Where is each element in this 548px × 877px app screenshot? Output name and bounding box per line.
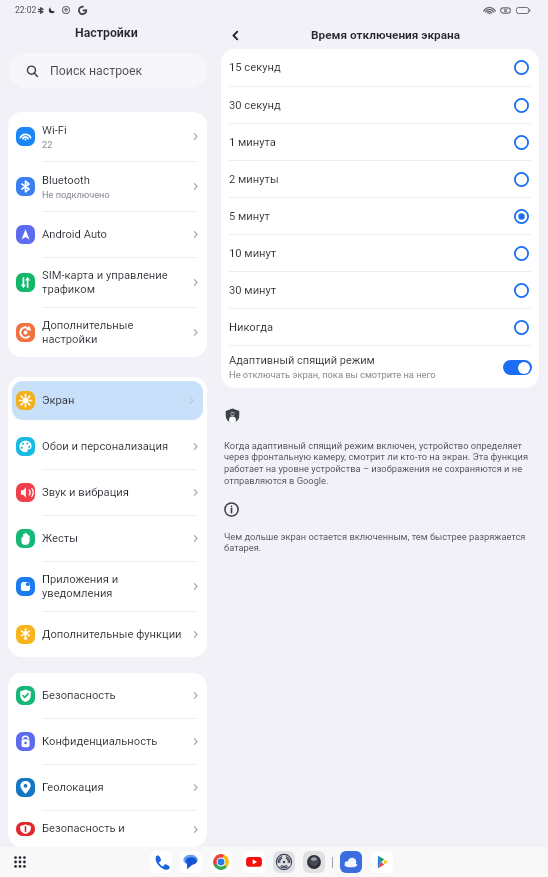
staticText: Геолокация: [42, 781, 104, 794]
staticText: Никогда: [229, 321, 514, 334]
button[interactable]: Экран: [12, 381, 203, 420]
button[interactable]: 10 минут: [221, 235, 539, 271]
staticText: Чем дольше экран остается включенным, те…: [224, 531, 539, 554]
staticText: Конфиденциальность: [42, 735, 158, 748]
button[interactable]: Никогда: [221, 309, 539, 345]
staticText: Не подключено: [42, 189, 110, 200]
button[interactable]: Геолокация: [8, 765, 207, 810]
button[interactable]: Безопасность и экстренные службы: [8, 811, 207, 847]
button[interactable]: Телефон: [150, 851, 172, 873]
button[interactable]: 1 минута: [221, 124, 539, 160]
staticText: Когда адаптивный спящий режим включен, у…: [224, 440, 539, 487]
staticText: Жесты: [42, 532, 78, 545]
staticText: Время отключения экрана: [311, 28, 461, 42]
staticText: 10 минут: [229, 247, 514, 260]
button[interactable]: Wi-Fi: [8, 112, 207, 161]
button[interactable]: Chrome: [210, 851, 232, 873]
staticText: Звук и вибрация: [42, 486, 129, 499]
button[interactable]: Поиск настроек: [9, 53, 207, 88]
button[interactable]: Настройки: [273, 851, 295, 873]
button[interactable]: Жесты: [8, 516, 207, 561]
staticText: 2 минуты: [229, 173, 514, 186]
staticText: 30 секунд: [229, 99, 514, 112]
button[interactable]: Звук и вибрация: [8, 470, 207, 515]
button[interactable]: 15 секунд: [221, 49, 539, 86]
button[interactable]: Погода: [340, 851, 362, 873]
staticText: Безопасность: [42, 689, 116, 702]
staticText: Android Auto: [42, 228, 107, 241]
button[interactable]: Приложения и уведомления: [8, 562, 207, 611]
button[interactable]: Адаптивный спящий режим: [221, 346, 539, 388]
staticText: 22: [42, 139, 53, 150]
staticText: 15 секунд: [229, 61, 514, 74]
button[interactable]: Конфиденциальность: [8, 719, 207, 764]
button[interactable]: Камера: [303, 851, 325, 873]
staticText: Обои и персонализация: [42, 440, 169, 453]
staticText: Bluetooth: [42, 174, 90, 187]
button[interactable]: Все приложения: [14, 856, 26, 868]
button[interactable]: Безопасность: [8, 673, 207, 718]
button[interactable]: Назад: [224, 24, 246, 46]
button[interactable]: Обои и персонализация: [8, 424, 207, 469]
staticText: Экран: [42, 394, 75, 407]
button[interactable]: 5 минут: [221, 198, 539, 234]
staticText: 5 минут: [229, 210, 514, 223]
button[interactable]: Play Маркет: [371, 851, 393, 873]
staticText: SIM-карта и управление трафиком: [42, 269, 186, 296]
button[interactable]: Сообщения: [180, 851, 202, 873]
button[interactable]: 2 минуты: [221, 161, 539, 197]
button[interactable]: 30 минут: [221, 272, 539, 308]
button[interactable]: Дополнительные функции: [8, 612, 207, 657]
staticText: Дополнительные настройки: [42, 319, 186, 346]
staticText: Поиск настроек: [50, 64, 143, 78]
button[interactable]: Android Auto: [8, 212, 207, 257]
staticText: 22:02: [15, 5, 37, 15]
button[interactable]: Bluetooth: [8, 162, 207, 211]
staticText: Wi-Fi: [42, 124, 67, 137]
staticText: 1 минута: [229, 136, 514, 149]
staticText: Дополнительные функции: [42, 628, 182, 641]
button[interactable]: Дополнительные настройки: [8, 308, 207, 357]
staticText: Безопасность и экстренные службы: [42, 822, 186, 836]
staticText: 30 минут: [229, 284, 514, 297]
button[interactable]: SIM-карта и управление трафиком: [8, 258, 207, 307]
staticText: Не отключать экран, пока вы смотрите на …: [229, 369, 436, 380]
button[interactable]: 30 секунд: [221, 87, 539, 123]
button[interactable]: YouTube: [243, 851, 265, 873]
staticText: Адаптивный спящий режим: [229, 354, 375, 367]
staticText: Приложения и уведомления: [42, 573, 186, 600]
staticText: Настройки: [75, 26, 138, 40]
